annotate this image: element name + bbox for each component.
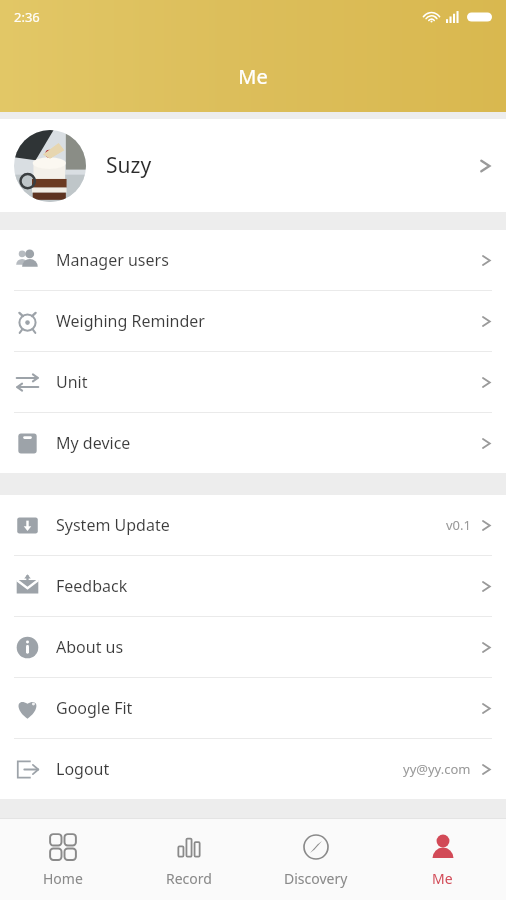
staticText: Logout [56, 758, 110, 780]
staticText: Me [432, 869, 453, 888]
button[interactable]: Suzy [0, 119, 506, 212]
button[interactable]: System Update [0, 495, 506, 556]
button[interactable]: About us [0, 617, 506, 678]
staticText: About us [56, 636, 124, 658]
staticText: Home [43, 869, 83, 888]
button[interactable]: Record [126, 819, 252, 900]
staticText: 2:36 [14, 8, 40, 26]
staticText: Weighing Reminder [56, 310, 205, 332]
staticText: yy@yy.com [403, 760, 471, 778]
staticText: Manager users [56, 249, 169, 271]
staticText: System Update [56, 514, 170, 536]
button[interactable]: Home [0, 819, 126, 900]
staticText: Discovery [284, 869, 348, 888]
staticText: v0.1 [446, 516, 471, 534]
button[interactable]: Discovery [252, 819, 379, 900]
button[interactable]: Feedback [0, 556, 506, 617]
button[interactable]: Manager users [0, 230, 506, 291]
button[interactable]: Unit [0, 352, 506, 413]
button[interactable]: Logout [0, 739, 506, 799]
staticText: Unit [56, 371, 88, 393]
button[interactable]: Weighing Reminder [0, 291, 506, 352]
staticText: Record [166, 869, 212, 888]
button[interactable]: Me [379, 819, 506, 900]
staticText: Suzy [106, 151, 152, 180]
button[interactable]: Google Fit [0, 678, 506, 739]
staticText: Feedback [56, 575, 128, 597]
staticText: My device [56, 432, 131, 454]
staticText: Google Fit [56, 697, 133, 719]
staticText: Me [238, 63, 268, 90]
button[interactable]: My device [0, 413, 506, 473]
